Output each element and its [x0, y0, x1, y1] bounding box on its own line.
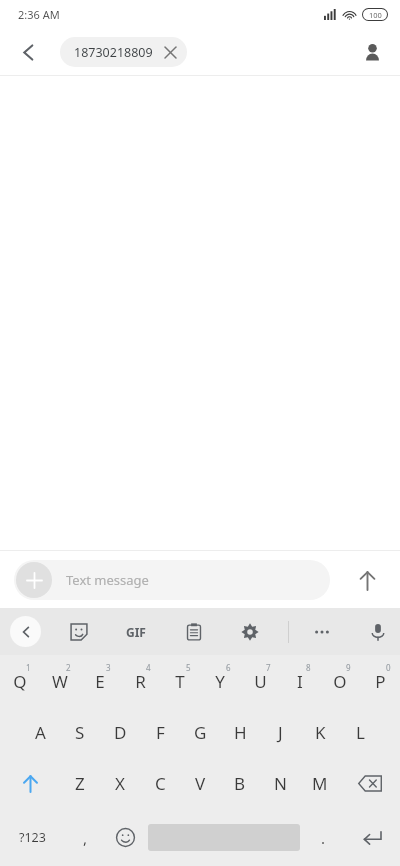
button[interactable]: Keyboard tool	[230, 612, 270, 652]
staticText: ,	[83, 828, 88, 848]
button[interactable]: ?123	[0, 809, 65, 866]
button[interactable]: Keyboard tool	[174, 612, 214, 652]
button[interactable]: K	[300, 707, 340, 757]
button[interactable]: Comma	[65, 809, 105, 866]
staticText: 6	[226, 662, 231, 673]
staticText: Z	[75, 772, 85, 795]
button[interactable]: Q	[0, 655, 40, 707]
button[interactable]: Contact	[352, 32, 392, 72]
staticText: P	[375, 670, 386, 693]
button[interactable]: Period	[303, 809, 343, 866]
staticText: 0	[386, 662, 391, 673]
button[interactable]: C	[140, 757, 180, 809]
button[interactable]: L	[340, 707, 380, 757]
staticText: .	[321, 828, 326, 848]
staticText: 2:36 AM	[18, 7, 60, 22]
button[interactable]: B	[220, 757, 260, 809]
staticText: N	[274, 772, 287, 795]
button[interactable]: Z	[60, 757, 100, 809]
staticText: A	[35, 721, 46, 744]
staticText: S	[75, 721, 85, 744]
staticText: V	[195, 772, 206, 795]
button[interactable]: Attach	[16, 562, 52, 598]
button[interactable]: Enter	[343, 809, 400, 866]
staticText: U	[254, 670, 267, 693]
staticText: C	[155, 772, 166, 795]
staticText: GIF	[126, 624, 146, 640]
staticText: ?123	[19, 829, 46, 846]
staticText: W	[52, 670, 68, 693]
button[interactable]: X	[100, 757, 140, 809]
staticText: D	[114, 721, 127, 744]
button[interactable]: Send	[346, 559, 388, 601]
staticText: 8	[306, 662, 311, 673]
staticText: 100	[369, 10, 382, 20]
button[interactable]: V	[180, 757, 220, 809]
button[interactable]: Keyboard tool	[116, 612, 156, 652]
button[interactable]: Shift	[0, 757, 60, 809]
button[interactable]: I	[280, 655, 320, 707]
button[interactable]: T	[160, 655, 200, 707]
button[interactable]: D	[100, 707, 140, 757]
button[interactable]: Space	[145, 809, 303, 866]
staticText: 5	[186, 662, 191, 673]
button[interactable]: Remove recipient	[161, 43, 179, 61]
staticText: 18730218809	[74, 44, 153, 61]
button[interactable]: N	[260, 757, 300, 809]
staticText: J	[278, 721, 283, 744]
staticText: Text message	[66, 571, 149, 589]
button[interactable]: Emoji	[105, 809, 145, 866]
staticText: 1	[26, 662, 31, 673]
staticText: B	[234, 772, 246, 795]
button[interactable]: M	[300, 757, 340, 809]
staticText: 3	[106, 662, 111, 673]
staticText: R	[135, 670, 146, 693]
staticText: F	[156, 721, 165, 744]
button[interactable]: J	[260, 707, 300, 757]
staticText: H	[234, 721, 247, 744]
staticText: G	[194, 721, 207, 744]
staticText: Q	[13, 670, 27, 693]
button[interactable]: Keyboard tool	[302, 612, 342, 652]
button[interactable]: Attach	[14, 560, 330, 600]
button[interactable]: O	[320, 655, 360, 707]
button[interactable]: Y	[200, 655, 240, 707]
button[interactable]: P	[360, 655, 400, 707]
button[interactable]: Keyboard tool	[59, 612, 99, 652]
staticText: O	[333, 670, 347, 693]
button[interactable]: H	[220, 707, 260, 757]
button[interactable]: E	[80, 655, 120, 707]
button[interactable]: A	[20, 707, 60, 757]
staticText: X	[115, 772, 125, 795]
staticText: 7	[266, 662, 271, 673]
button[interactable]: S	[60, 707, 100, 757]
button[interactable]: Backspace	[340, 757, 400, 809]
button[interactable]: Close toolbar	[10, 616, 41, 647]
button[interactable]: U	[240, 655, 280, 707]
staticText: T	[175, 670, 185, 693]
button[interactable]: G	[180, 707, 220, 757]
button[interactable]: 18730218809	[60, 37, 187, 67]
staticText: K	[315, 721, 326, 744]
staticText: L	[356, 721, 365, 744]
staticText: 2	[66, 662, 71, 673]
staticText: Y	[215, 670, 225, 693]
staticText: I	[297, 670, 303, 693]
button[interactable]: Back	[8, 32, 48, 72]
staticText: 4	[146, 662, 151, 673]
button[interactable]: W	[40, 655, 80, 707]
button[interactable]: R	[120, 655, 160, 707]
button[interactable]: Keyboard tool	[358, 612, 398, 652]
button[interactable]: F	[140, 707, 180, 757]
staticText: M	[312, 772, 328, 795]
staticText: 9	[346, 662, 351, 673]
staticText: E	[95, 670, 105, 693]
